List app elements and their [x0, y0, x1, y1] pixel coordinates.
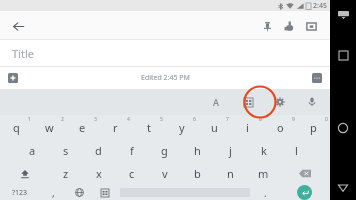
staticText: x [96, 166, 102, 181]
staticText: f [130, 143, 134, 158]
button[interactable]: Change language [66, 185, 92, 200]
staticText: l [295, 143, 298, 158]
staticText: c [129, 166, 135, 181]
button[interactable]: Recents [334, 46, 352, 64]
button[interactable]: w [33, 115, 66, 139]
button[interactable]: f [115, 139, 148, 162]
button[interactable]: n [214, 162, 247, 185]
button[interactable]: Hide keyboard [334, 6, 352, 24]
button[interactable]: Back [8, 16, 28, 36]
button[interactable]: Enter [278, 185, 330, 200]
staticText: u [211, 120, 218, 135]
staticText: j [229, 143, 232, 158]
button[interactable]: Archive [300, 15, 322, 37]
button[interactable]: . [252, 185, 278, 200]
staticText: 2 [61, 116, 64, 123]
staticText: . [264, 186, 267, 200]
staticText: ?123 [12, 188, 28, 198]
button[interactable]: Voice input [300, 90, 324, 114]
staticText: t [147, 120, 151, 135]
button[interactable]: y [165, 115, 198, 139]
button[interactable]: Shift [0, 162, 49, 185]
button[interactable]: c [115, 162, 148, 185]
staticText: y [179, 120, 185, 135]
staticText: r [113, 120, 118, 135]
staticText: 4 [127, 116, 130, 123]
staticText: s [63, 143, 69, 158]
button[interactable]: j [214, 139, 247, 162]
staticText: a [29, 143, 36, 158]
staticText: e [79, 120, 86, 135]
staticText: Title [12, 46, 34, 61]
button[interactable]: More options [308, 69, 326, 87]
staticText: m [258, 166, 269, 181]
button[interactable]: Backspace [280, 162, 330, 185]
staticText: h [194, 143, 201, 158]
staticText: 2:45 [313, 1, 327, 11]
staticText: 9 [292, 116, 295, 123]
button[interactable]: m [247, 162, 280, 185]
staticText: k [261, 143, 267, 158]
staticText: z [63, 166, 69, 181]
staticText: Edited 2:45 PM [141, 73, 190, 83]
button[interactable]: Reminder [278, 15, 300, 37]
button[interactable]: s [49, 139, 82, 162]
staticText: 8 [259, 116, 262, 123]
staticText: v [162, 166, 168, 181]
button[interactable]: z [49, 162, 82, 185]
button[interactable]: Text style [204, 90, 228, 114]
button[interactable]: k [247, 139, 280, 162]
staticText: p [310, 120, 317, 135]
button[interactable]: i [231, 115, 264, 139]
button[interactable]: v [148, 162, 181, 185]
staticText: 7 [226, 116, 229, 123]
button[interactable]: x [82, 162, 115, 185]
button[interactable]: Add [4, 69, 22, 87]
button[interactable]: ?123 [0, 185, 40, 200]
button[interactable]: e [66, 115, 99, 139]
staticText: , [52, 186, 55, 200]
button[interactable]: q [0, 115, 33, 139]
button[interactable]: Settings [268, 90, 292, 114]
button[interactable]: Sticker [236, 90, 260, 114]
button[interactable]: b [181, 162, 214, 185]
button[interactable]: u [198, 115, 231, 139]
staticText: 0 [325, 116, 328, 123]
button[interactable]: a [16, 139, 49, 162]
button[interactable]: r [99, 115, 132, 139]
staticText: d [95, 143, 102, 158]
button[interactable]: Home [334, 119, 352, 137]
staticText: w [45, 120, 54, 135]
button[interactable]: l [280, 139, 313, 162]
staticText: 5 [160, 116, 163, 123]
staticText: b [194, 166, 201, 181]
button[interactable]: p [297, 115, 330, 139]
button[interactable]: , [40, 185, 66, 200]
staticText: g [161, 143, 168, 158]
button[interactable]: d [82, 139, 115, 162]
button[interactable]: Pin [256, 15, 278, 37]
staticText: n [227, 166, 234, 181]
staticText: 6 [193, 116, 196, 123]
button[interactable]: t [132, 115, 165, 139]
staticText: 1 [28, 116, 31, 123]
staticText: 3 [94, 116, 97, 123]
staticText: A [213, 96, 219, 108]
staticText: o [277, 120, 284, 135]
button[interactable]: h [181, 139, 214, 162]
button[interactable]: Emoji [92, 185, 118, 200]
staticText: i [246, 120, 249, 135]
button[interactable]: o [264, 115, 297, 139]
button[interactable]: g [148, 139, 181, 162]
staticText: q [13, 120, 20, 135]
button[interactable]: Back [334, 179, 352, 197]
